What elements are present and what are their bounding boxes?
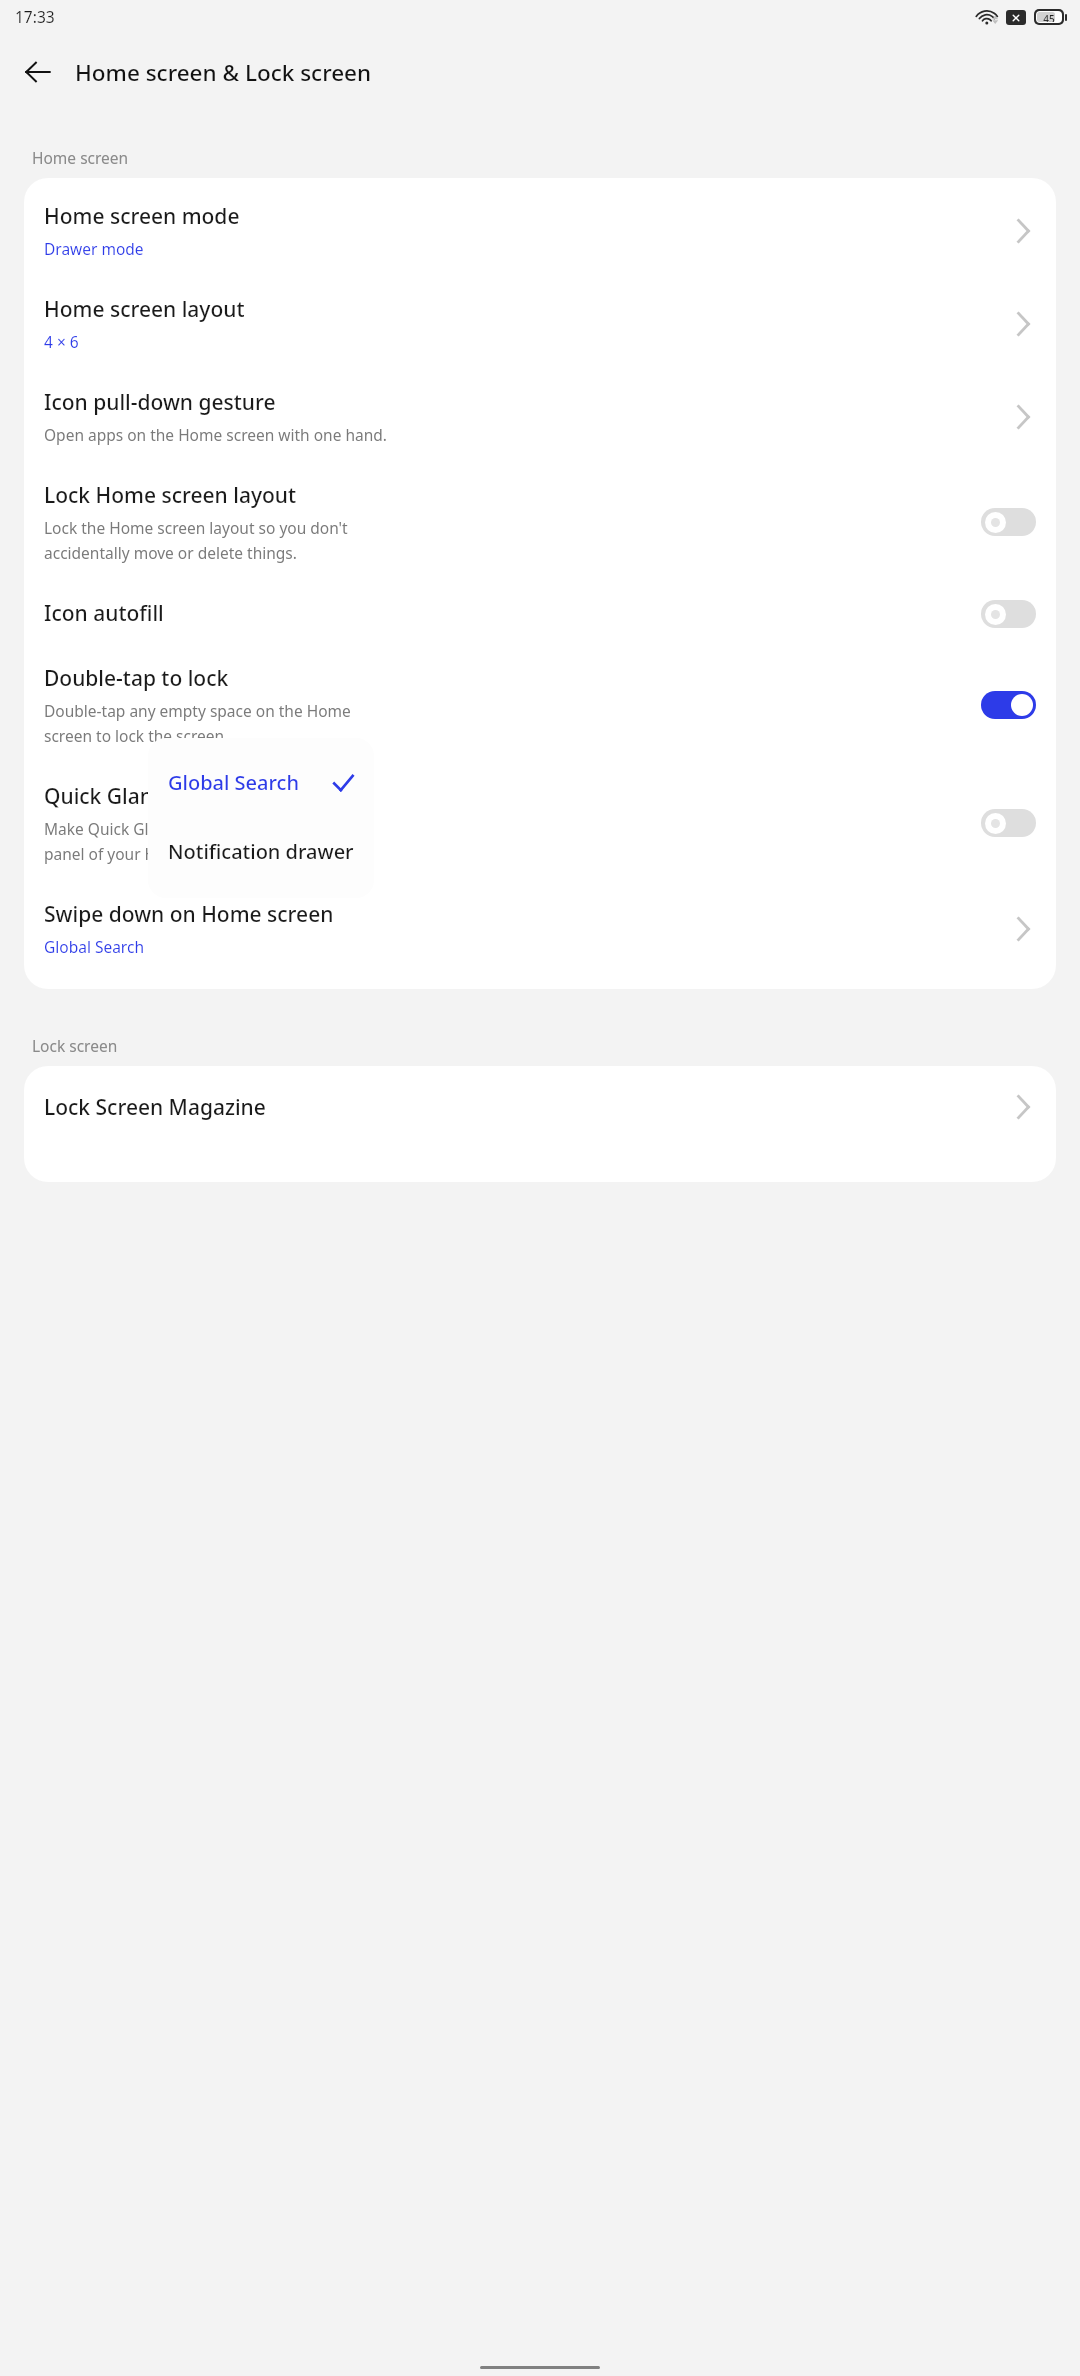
button[interactable]: Double-tap to lock	[24, 646, 1056, 764]
button[interactable]: Off	[981, 809, 1036, 837]
staticText: Lock the Home screen layout so you don't…	[44, 517, 348, 563]
staticText: Global Search	[168, 769, 332, 796]
button[interactable]: Quick Glance	[24, 764, 1056, 882]
staticText: Home screen mode	[44, 202, 240, 231]
staticText: Notification drawer	[168, 838, 354, 865]
button[interactable]: Back	[12, 46, 64, 98]
button[interactable]: Home screen layout	[24, 277, 1056, 370]
button[interactable]: Icon pull-down gesture	[24, 370, 1056, 463]
button[interactable]: On	[981, 691, 1036, 719]
staticText: Swipe down on Home screen	[44, 900, 334, 929]
button[interactable]: Lock Home screen layout	[24, 463, 1056, 581]
staticText: Double-tap any empty space on the Home s…	[44, 700, 351, 746]
staticText: Lock screen	[32, 1035, 118, 1056]
staticText: Home screen	[32, 147, 129, 168]
staticText: Quick Glance	[44, 782, 176, 811]
staticText: Open apps on the Home screen with one ha…	[44, 424, 387, 445]
staticText: 4 × 6	[44, 331, 79, 352]
button[interactable]: Off	[981, 600, 1036, 628]
button[interactable]: Icon autofill	[24, 581, 1056, 646]
staticText: Drawer mode	[44, 238, 144, 259]
button[interactable]: Lock Screen Magazine	[24, 1072, 1056, 1142]
staticText: Home screen layout	[44, 295, 245, 324]
button[interactable]: Global Search	[148, 754, 374, 811]
button[interactable]: Swipe down on Home screen	[24, 882, 1056, 975]
button[interactable]: Off	[981, 508, 1036, 536]
staticText: Icon autofill	[44, 599, 164, 628]
staticText: Make Quick Glance available on the leftm…	[44, 818, 367, 864]
staticText: 17:33	[15, 6, 55, 27]
button[interactable]: Home screen mode	[24, 184, 1056, 277]
staticText: Lock Screen Magazine	[44, 1093, 266, 1122]
staticText: Lock Home screen layout	[44, 481, 297, 510]
staticText: Global Search	[44, 936, 144, 957]
staticText: Double-tap to lock	[44, 664, 229, 693]
staticText: Icon pull-down gesture	[44, 388, 276, 417]
button[interactable]: Notification drawer	[148, 823, 374, 880]
staticText: 45	[1037, 12, 1061, 22]
staticText: Home screen & Lock screen	[75, 57, 372, 88]
